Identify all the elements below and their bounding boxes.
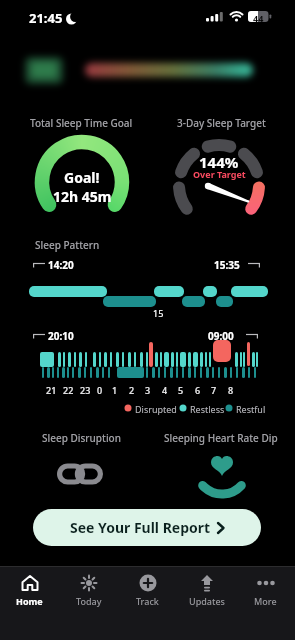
staticText: 22	[63, 384, 74, 396]
staticText: 21	[46, 384, 57, 396]
staticText: 7	[211, 384, 217, 396]
staticText: 15:35	[214, 258, 240, 272]
staticText: 23	[80, 384, 91, 396]
staticText: Disrupted	[135, 403, 177, 415]
staticText: 1	[112, 384, 118, 396]
staticText: Updates	[189, 595, 225, 607]
staticText: Total Sleep Time Goal	[30, 116, 133, 130]
button[interactable]: Today	[59, 574, 118, 607]
button[interactable]: Home	[0, 574, 59, 607]
staticText: 09:00	[208, 329, 234, 343]
staticText: Sleep Pattern	[35, 238, 100, 252]
staticText: 14:20	[48, 258, 74, 272]
button[interactable]: See Your Full Report	[33, 509, 261, 546]
staticText: 20:10	[48, 329, 74, 343]
staticText: Restful	[236, 403, 266, 415]
staticText: Sleep Disruption	[42, 431, 121, 445]
button[interactable]: More	[236, 574, 295, 607]
staticText: Sleeping Heart Rate Dip	[164, 431, 278, 445]
staticText: More	[254, 595, 277, 607]
staticText: Goal!	[64, 168, 100, 187]
staticText: 3	[145, 384, 151, 396]
staticText: 44	[253, 12, 264, 24]
button[interactable]: Updates	[177, 574, 236, 607]
staticText: 6	[195, 384, 201, 396]
staticText: Home	[16, 595, 43, 607]
staticText: 4	[162, 384, 168, 396]
staticText: 8	[228, 384, 234, 396]
staticText: 2	[129, 384, 135, 396]
staticText: 0	[97, 384, 103, 396]
staticText: 12h 45m	[53, 187, 112, 206]
staticText: 5	[178, 384, 184, 396]
staticText: 144%	[199, 152, 239, 172]
button[interactable]: Track	[118, 574, 177, 607]
staticText: Track	[136, 595, 159, 607]
staticText: 21:45	[29, 9, 63, 27]
staticText: Restless	[190, 403, 225, 415]
staticText: 3-Day Sleep Target	[177, 116, 266, 130]
staticText: See Your Full Report	[70, 518, 211, 537]
staticText: 15	[153, 307, 164, 319]
staticText: Over Target	[193, 168, 246, 180]
staticText: Today	[76, 595, 102, 607]
